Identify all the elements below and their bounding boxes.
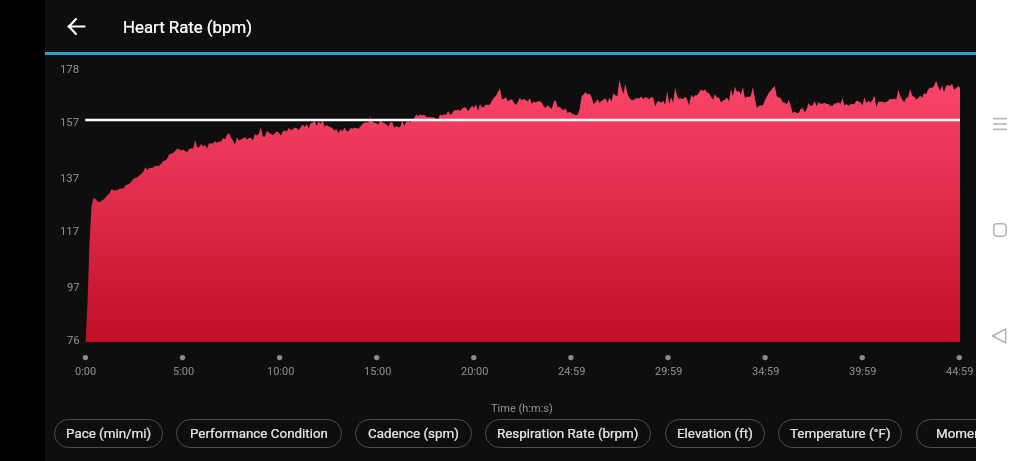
staticText: 157: [60, 116, 80, 129]
staticText: 24:59: [558, 365, 586, 378]
button[interactable]: Home: [976, 206, 1024, 254]
button[interactable]: Temperature (°F): [778, 419, 902, 448]
staticText: Cadence (spm): [368, 426, 459, 442]
staticText: 29:59: [655, 365, 683, 378]
staticText: Elevation (ft): [677, 426, 753, 442]
staticText: Time (h:m:s): [491, 402, 553, 415]
staticText: 15:00: [364, 365, 392, 378]
button[interactable]: Cadence (spm): [355, 419, 472, 448]
staticText: 44:59: [946, 365, 974, 378]
button[interactable]: Elevation (ft): [665, 419, 765, 448]
staticText: 97: [67, 281, 80, 294]
staticText: 76: [67, 334, 80, 347]
staticText: Moments: [936, 426, 993, 442]
staticText: 137: [60, 172, 80, 185]
button[interactable]: Respiration Rate (brpm): [485, 419, 651, 448]
staticText: 0:00: [75, 365, 97, 378]
staticText: 39:59: [849, 365, 877, 378]
staticText: Respiration Rate (brpm): [497, 426, 639, 442]
staticText: 178: [60, 63, 80, 76]
staticText: Performance Condition: [190, 426, 329, 442]
button[interactable]: Back: [53, 3, 100, 50]
staticText: 117: [60, 225, 80, 238]
staticText: Heart Rate (bpm): [123, 17, 253, 37]
staticText: 20:00: [461, 365, 489, 378]
button[interactable]: Back: [976, 312, 1024, 360]
button[interactable]: Performance Condition: [176, 419, 342, 448]
button[interactable]: Pace (min/mi): [54, 419, 163, 448]
button[interactable]: Moments: [916, 419, 1012, 448]
staticText: Temperature (°F): [790, 426, 891, 442]
staticText: 5:00: [173, 365, 195, 378]
button[interactable]: Recent apps: [976, 100, 1024, 148]
staticText: 34:59: [752, 365, 780, 378]
staticText: 10:00: [267, 365, 295, 378]
staticText: Pace (min/mi): [66, 426, 152, 442]
